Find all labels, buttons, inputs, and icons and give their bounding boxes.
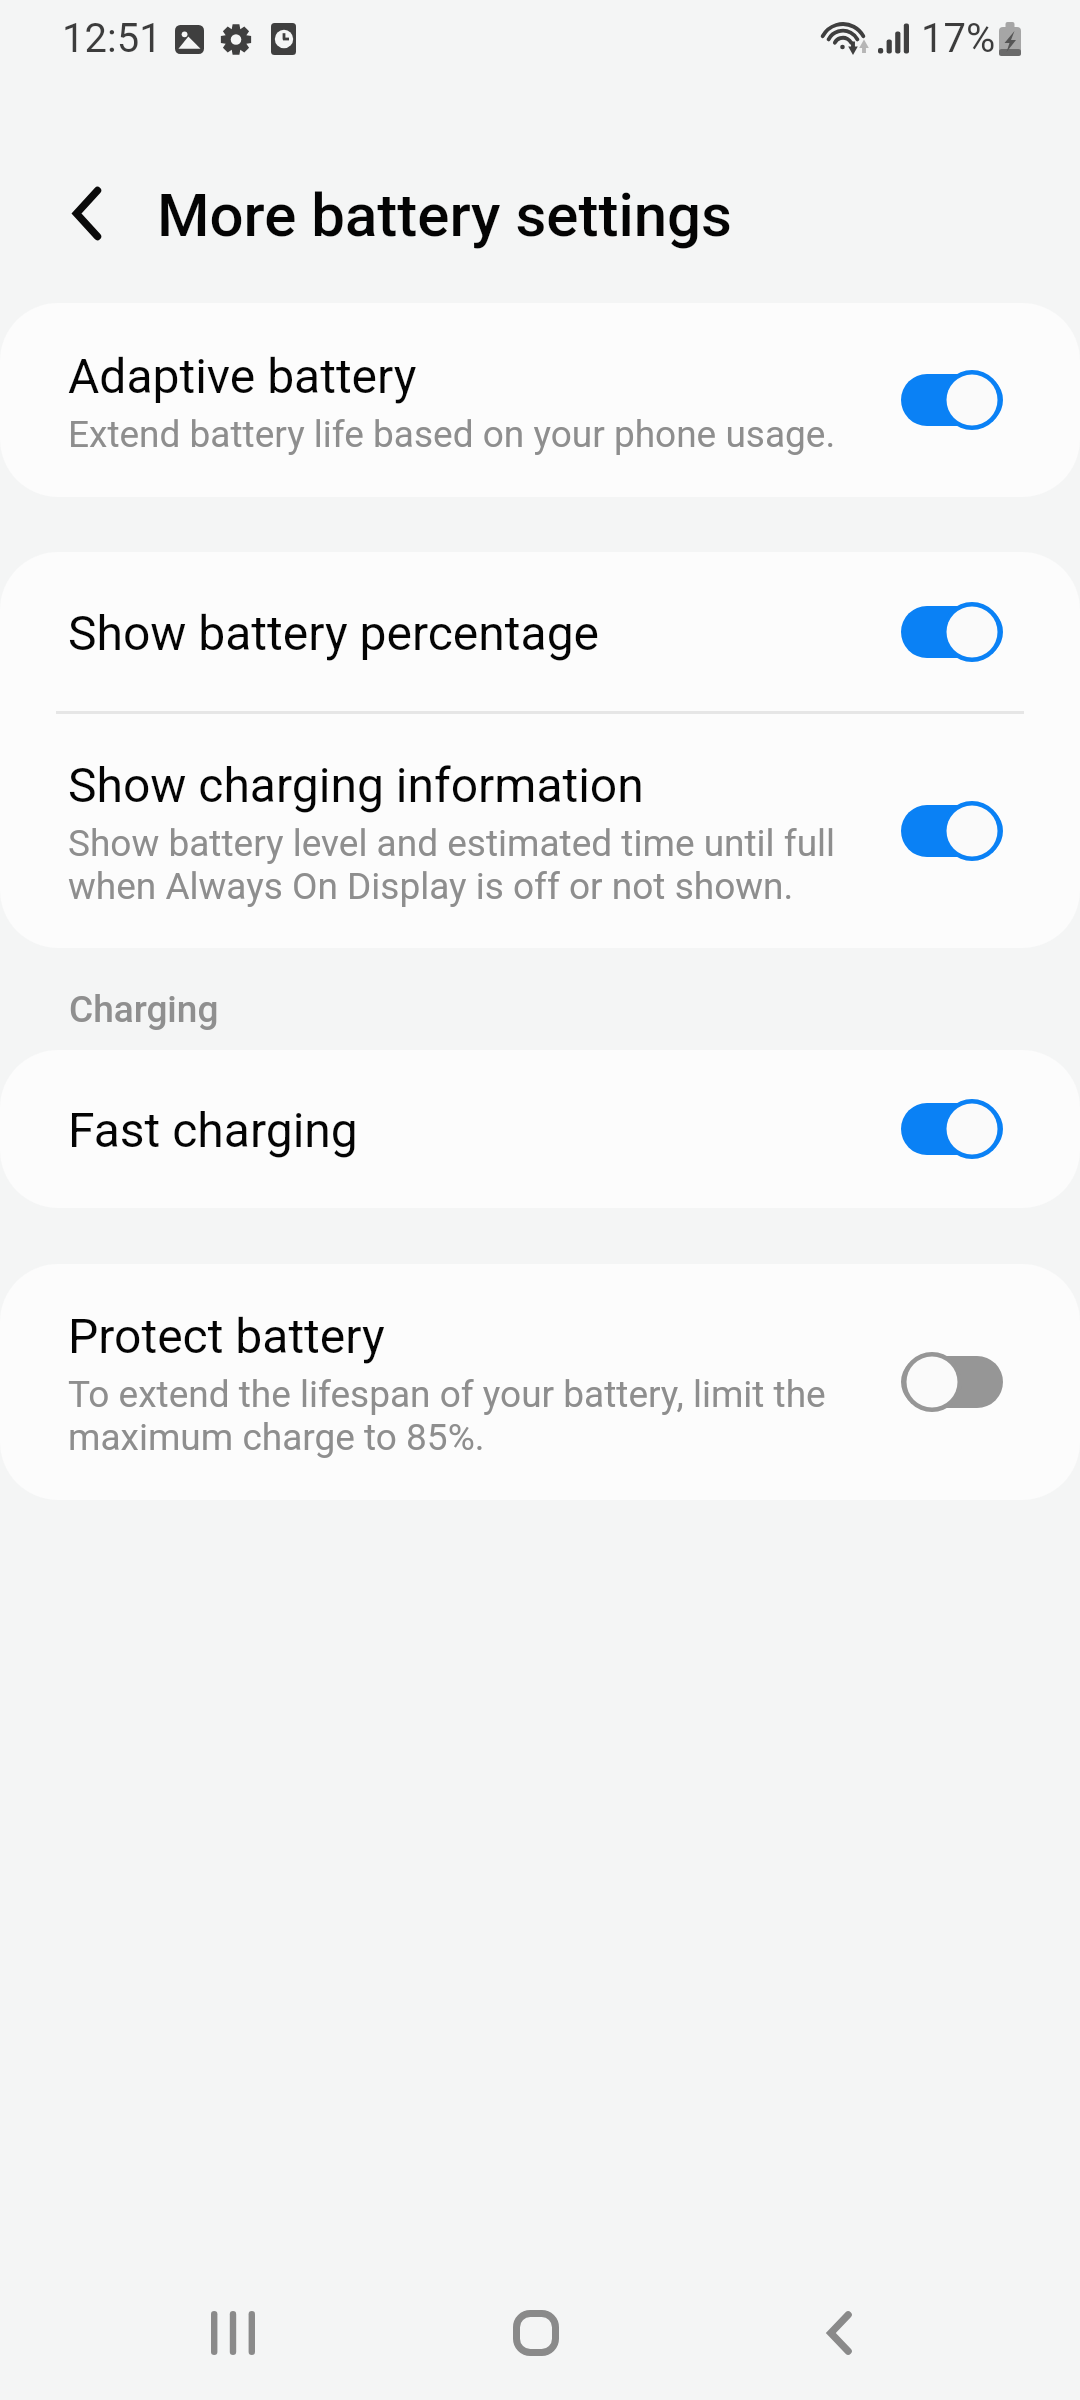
button[interactable]: On	[901, 369, 1003, 431]
staticText: More battery settings	[157, 180, 732, 250]
button[interactable]: Protect battery	[0, 1264, 1080, 1500]
staticText: Extend battery life based on your phone …	[68, 413, 836, 456]
staticText: Show charging information	[68, 758, 644, 814]
button[interactable]: Show charging information	[0, 714, 1080, 948]
button[interactable]: Adaptive battery	[0, 303, 1080, 497]
staticText: Show battery percentage	[68, 606, 600, 662]
button[interactable]: Recent apps	[178, 2278, 288, 2388]
staticText: Fast charging	[68, 1103, 358, 1159]
staticText: Adaptive battery	[68, 349, 417, 405]
button[interactable]: Off	[901, 1351, 1003, 1413]
button[interactable]: On	[901, 1098, 1003, 1160]
button[interactable]: On	[901, 601, 1003, 663]
staticText: Protect battery	[68, 1309, 385, 1365]
staticText: 17%	[921, 15, 996, 62]
button[interactable]: Navigate up	[43, 169, 131, 257]
staticText: Charging	[69, 988, 219, 1031]
staticText: 12:51	[62, 15, 162, 62]
staticText: To extend the lifespan of your battery, …	[68, 1373, 875, 1459]
button[interactable]: On	[901, 800, 1003, 862]
button[interactable]: Home	[481, 2278, 591, 2388]
button[interactable]: Show battery percentage	[0, 552, 1080, 711]
staticText: Show battery level and estimated time un…	[68, 822, 875, 908]
button[interactable]: Back	[784, 2278, 894, 2388]
button[interactable]: Fast charging	[0, 1050, 1080, 1208]
